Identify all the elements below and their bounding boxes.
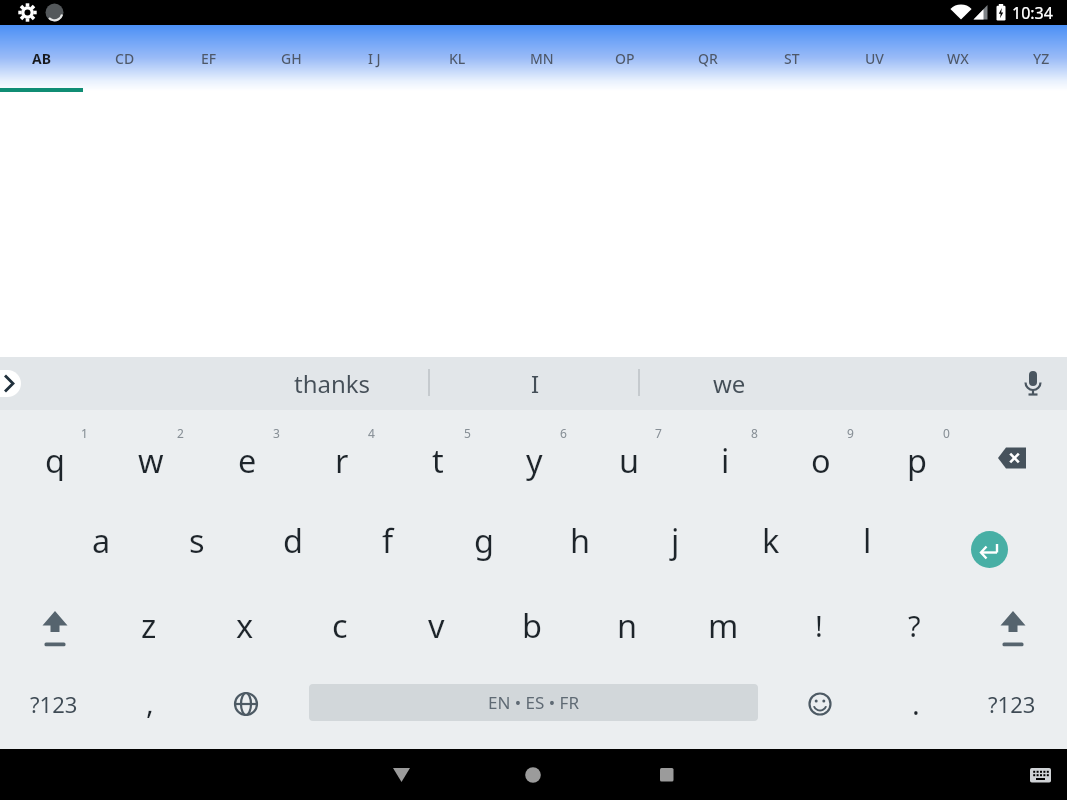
staticText: UV: [865, 49, 884, 68]
staticText: x: [236, 603, 254, 647]
staticText: 4: [368, 425, 375, 441]
button[interactable]: q: [8, 420, 102, 500]
button[interactable]: [1016, 368, 1050, 402]
button[interactable]: i: [678, 420, 772, 500]
staticText: 10:34: [1012, 2, 1053, 23]
staticText: ,: [146, 683, 154, 722]
button[interactable]: [0, 370, 21, 397]
staticText: WX: [947, 49, 969, 68]
staticText: CD: [115, 49, 135, 68]
button[interactable]: I: [440, 357, 630, 410]
button[interactable]: ?: [867, 585, 961, 665]
button[interactable]: ?123: [965, 664, 1059, 744]
staticText: q: [45, 438, 65, 482]
button[interactable]: [965, 418, 1059, 498]
staticText: k: [762, 518, 780, 562]
staticText: z: [141, 603, 157, 647]
staticText: 5: [464, 425, 471, 441]
button[interactable]: OP: [583, 25, 666, 91]
button[interactable]: YZ: [1000, 25, 1067, 91]
staticText: I J: [368, 49, 381, 68]
button[interactable]: [1020, 755, 1060, 795]
staticText: g: [474, 518, 494, 562]
button[interactable]: v: [389, 585, 483, 665]
staticText: o: [811, 438, 831, 482]
staticText: 2: [177, 425, 184, 441]
staticText: t: [432, 438, 444, 482]
button[interactable]: [376, 750, 426, 800]
button[interactable]: ST: [750, 25, 833, 91]
button[interactable]: d: [246, 500, 340, 580]
button[interactable]: c: [293, 585, 387, 665]
button[interactable]: MN: [500, 25, 583, 91]
staticText: ?123: [30, 689, 78, 719]
staticText: EF: [201, 49, 217, 68]
button[interactable]: t: [391, 420, 485, 500]
button[interactable]: m: [676, 585, 770, 665]
button[interactable]: z: [102, 585, 196, 665]
staticText: w: [138, 438, 164, 482]
staticText: v: [428, 603, 445, 647]
button[interactable]: y: [487, 420, 581, 500]
staticText: a: [92, 518, 111, 562]
button[interactable]: QR: [666, 25, 749, 91]
button[interactable]: we: [634, 357, 824, 410]
staticText: GH: [281, 49, 302, 68]
staticText: 9: [847, 425, 854, 441]
staticText: thanks: [294, 367, 371, 400]
button[interactable]: ?123: [7, 664, 101, 744]
button[interactable]: .: [869, 663, 963, 743]
button[interactable]: CD: [83, 25, 166, 91]
button[interactable]: s: [150, 500, 244, 580]
button[interactable]: I J: [333, 25, 416, 91]
staticText: s: [189, 518, 205, 562]
button[interactable]: [642, 750, 692, 800]
button[interactable]: o: [774, 420, 868, 500]
button[interactable]: ,: [103, 662, 197, 742]
button[interactable]: AB: [0, 25, 83, 91]
button[interactable]: b: [485, 585, 579, 665]
button[interactable]: h: [533, 500, 627, 580]
button[interactable]: a: [54, 500, 148, 580]
button[interactable]: [508, 750, 558, 800]
button[interactable]: !: [772, 585, 866, 665]
staticText: !: [815, 606, 823, 645]
button[interactable]: p: [870, 420, 964, 500]
button[interactable]: l: [820, 500, 914, 580]
staticText: c: [332, 603, 348, 647]
button[interactable]: EN • ES • FR: [309, 684, 758, 721]
button[interactable]: f: [341, 500, 435, 580]
staticText: b: [522, 603, 542, 647]
button[interactable]: [966, 588, 1060, 668]
button[interactable]: j: [628, 500, 722, 580]
staticText: MN: [530, 49, 554, 68]
button[interactable]: KL: [416, 25, 499, 91]
button[interactable]: [949, 509, 1029, 589]
button[interactable]: g: [437, 500, 531, 580]
button[interactable]: [780, 664, 860, 744]
staticText: ?: [908, 606, 921, 645]
button[interactable]: n: [580, 585, 674, 665]
staticText: y: [526, 438, 543, 482]
button[interactable]: GH: [250, 25, 333, 91]
button[interactable]: WX: [916, 25, 999, 91]
button[interactable]: thanks: [237, 357, 427, 410]
button[interactable]: [8, 588, 102, 668]
button[interactable]: r: [295, 420, 389, 500]
button[interactable]: k: [724, 500, 818, 580]
staticText: AB: [32, 49, 51, 68]
staticText: we: [713, 367, 746, 400]
button[interactable]: u: [582, 420, 676, 500]
staticText: m: [708, 603, 739, 647]
button[interactable]: EF: [167, 25, 250, 91]
button[interactable]: UV: [833, 25, 916, 91]
staticText: 1: [81, 425, 88, 441]
staticText: 8: [751, 425, 758, 441]
button[interactable]: e: [200, 420, 294, 500]
button[interactable]: x: [198, 585, 292, 665]
button[interactable]: [206, 664, 286, 744]
staticText: u: [619, 438, 640, 482]
staticText: OP: [615, 49, 635, 68]
staticText: r: [335, 438, 349, 482]
button[interactable]: w: [104, 420, 198, 500]
